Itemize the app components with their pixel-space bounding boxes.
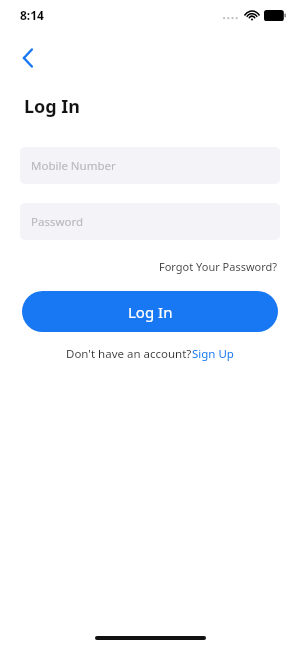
- staticText: Password: [31, 214, 84, 230]
- staticText: Sign Up: [192, 346, 234, 362]
- staticText: Forgot Your Password?: [159, 259, 278, 274]
- staticText: 8:14: [20, 7, 44, 23]
- button[interactable]: Log In: [22, 291, 278, 332]
- button[interactable]: Forgot Your Password?: [157, 256, 280, 277]
- staticText: Log In: [24, 94, 81, 119]
- button[interactable]: Mobile Number: [20, 147, 280, 184]
- staticText: Mobile Number: [31, 158, 116, 174]
- button[interactable]: Back: [10, 40, 46, 76]
- staticText: Don't have an account?: [66, 346, 192, 362]
- button[interactable]: Sign Up: [192, 346, 234, 362]
- staticText: Log In: [128, 302, 173, 322]
- button[interactable]: Password: [20, 203, 280, 240]
